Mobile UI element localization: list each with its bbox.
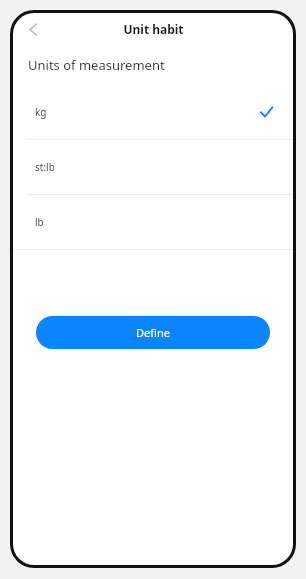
staticText: Unit habit bbox=[123, 21, 184, 37]
button[interactable]: st:lb bbox=[13, 140, 293, 194]
staticText: Units of measurement bbox=[28, 56, 165, 74]
staticText: kg bbox=[35, 105, 47, 119]
button[interactable]: Back bbox=[19, 15, 47, 43]
staticText: lb bbox=[35, 215, 44, 229]
button[interactable]: lb bbox=[13, 195, 293, 249]
button[interactable]: Define bbox=[36, 316, 270, 349]
staticText: Define bbox=[136, 325, 170, 340]
button[interactable]: kg bbox=[13, 85, 293, 139]
staticText: st:lb bbox=[35, 160, 55, 174]
